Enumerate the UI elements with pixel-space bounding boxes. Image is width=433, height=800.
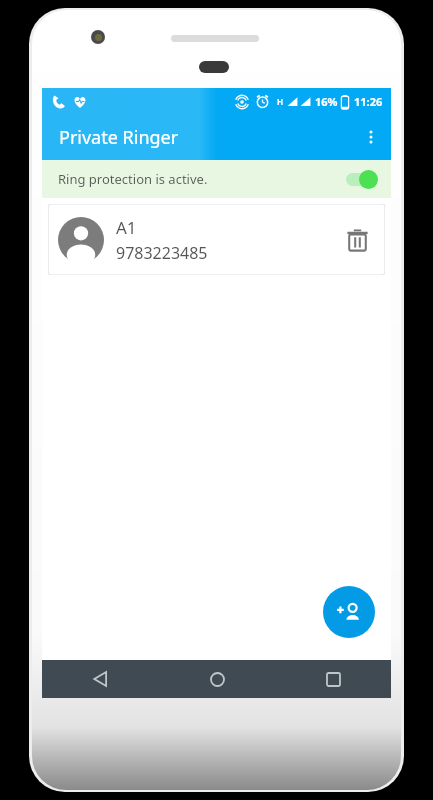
- staticText: 11:26: [354, 94, 383, 109]
- button[interactable]: A1: [48, 204, 385, 275]
- staticText: A1: [116, 216, 137, 239]
- staticText: H: [277, 96, 284, 107]
- staticText: Ring protection is active.: [58, 170, 208, 188]
- button[interactable]: Recents: [275, 660, 391, 698]
- button[interactable]: Back: [42, 660, 159, 698]
- staticText: 9783223485: [116, 242, 208, 264]
- button[interactable]: Delete contact: [337, 220, 377, 260]
- staticText: Private Ringer: [59, 125, 179, 150]
- button[interactable]: Home: [159, 660, 275, 698]
- button[interactable]: Add contact: [323, 586, 375, 638]
- staticText: 16%: [315, 94, 338, 109]
- button[interactable]: More options: [351, 117, 391, 157]
- button[interactable]: Ring protection is active.: [42, 160, 391, 198]
